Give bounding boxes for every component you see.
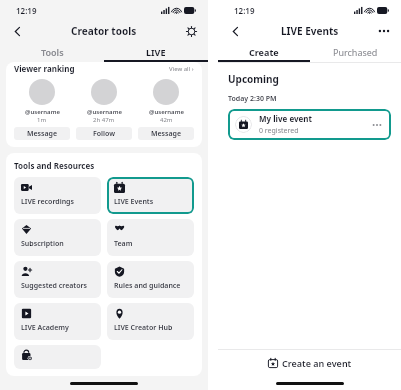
button[interactable]: LIVE: [104, 42, 208, 62]
button[interactable]: Create: [218, 42, 309, 62]
button[interactable]: Purchased: [309, 42, 401, 62]
staticText: Rules and guidance: [114, 281, 181, 291]
button[interactable]: Follow: [76, 127, 132, 140]
staticText: LIVE: [146, 46, 166, 58]
button[interactable]: Message: [138, 127, 194, 140]
staticText: @username: [87, 108, 122, 116]
staticText: LIVE recordings: [21, 197, 74, 207]
staticText: LIVE Events: [114, 197, 154, 207]
staticText: Creator tools: [71, 24, 137, 38]
staticText: 1m: [37, 116, 47, 124]
button[interactable]: Create an event: [218, 350, 401, 376]
staticText: Tools and Resources: [14, 160, 95, 171]
staticText: Create an event: [282, 357, 352, 369]
staticText: 42m: [160, 116, 173, 124]
staticText: LIVE Events: [281, 24, 339, 38]
staticText: Subscription: [21, 239, 64, 249]
button[interactable]: Settings: [182, 22, 200, 40]
button[interactable]: Subscription: [14, 219, 101, 256]
button[interactable]: LIVE recordings: [14, 177, 101, 214]
staticText: Follow: [93, 129, 116, 139]
staticText: Team: [114, 239, 133, 249]
staticText: Today 2:30 PM: [228, 94, 277, 104]
staticText: 12:19: [16, 5, 37, 16]
staticText: Purchased: [333, 46, 378, 58]
staticText: Viewer ranking: [14, 63, 169, 74]
button[interactable]: My live event: [228, 109, 391, 140]
button[interactable]: Message: [14, 127, 70, 140]
button[interactable]: Tools: [0, 42, 104, 62]
button[interactable]: LIVE Events: [107, 177, 194, 214]
button[interactable]: Team: [107, 219, 194, 256]
staticText: Tools: [41, 46, 64, 58]
button[interactable]: Back: [226, 22, 244, 40]
button[interactable]: More options: [375, 22, 393, 40]
staticText: Message: [151, 129, 182, 139]
staticText: Message: [27, 129, 58, 139]
staticText: My live event: [259, 113, 313, 124]
staticText: LIVE Creator Hub: [114, 323, 173, 333]
staticText: 0 registered: [259, 126, 299, 136]
staticText: Suggested creators: [21, 281, 88, 291]
staticText: LIVE Academy: [21, 323, 69, 333]
button[interactable]: Event options: [370, 118, 384, 132]
staticText: 2h 47m: [93, 116, 115, 124]
button[interactable]: LIVE Academy: [14, 303, 101, 340]
staticText: Create: [249, 46, 279, 58]
staticText: 12:19: [234, 5, 255, 16]
staticText: View all ›: [169, 65, 194, 73]
staticText: @username: [25, 108, 60, 116]
staticText: Upcoming: [228, 72, 279, 86]
button[interactable]: Rules and guidance: [107, 261, 194, 298]
button[interactable]: Suggested creators: [14, 261, 101, 298]
staticText: @username: [149, 108, 184, 116]
button[interactable]: Back: [8, 22, 26, 40]
button[interactable]: LIVE Creator Hub: [107, 303, 194, 340]
button[interactable]: Join Creator Network: [14, 345, 101, 369]
